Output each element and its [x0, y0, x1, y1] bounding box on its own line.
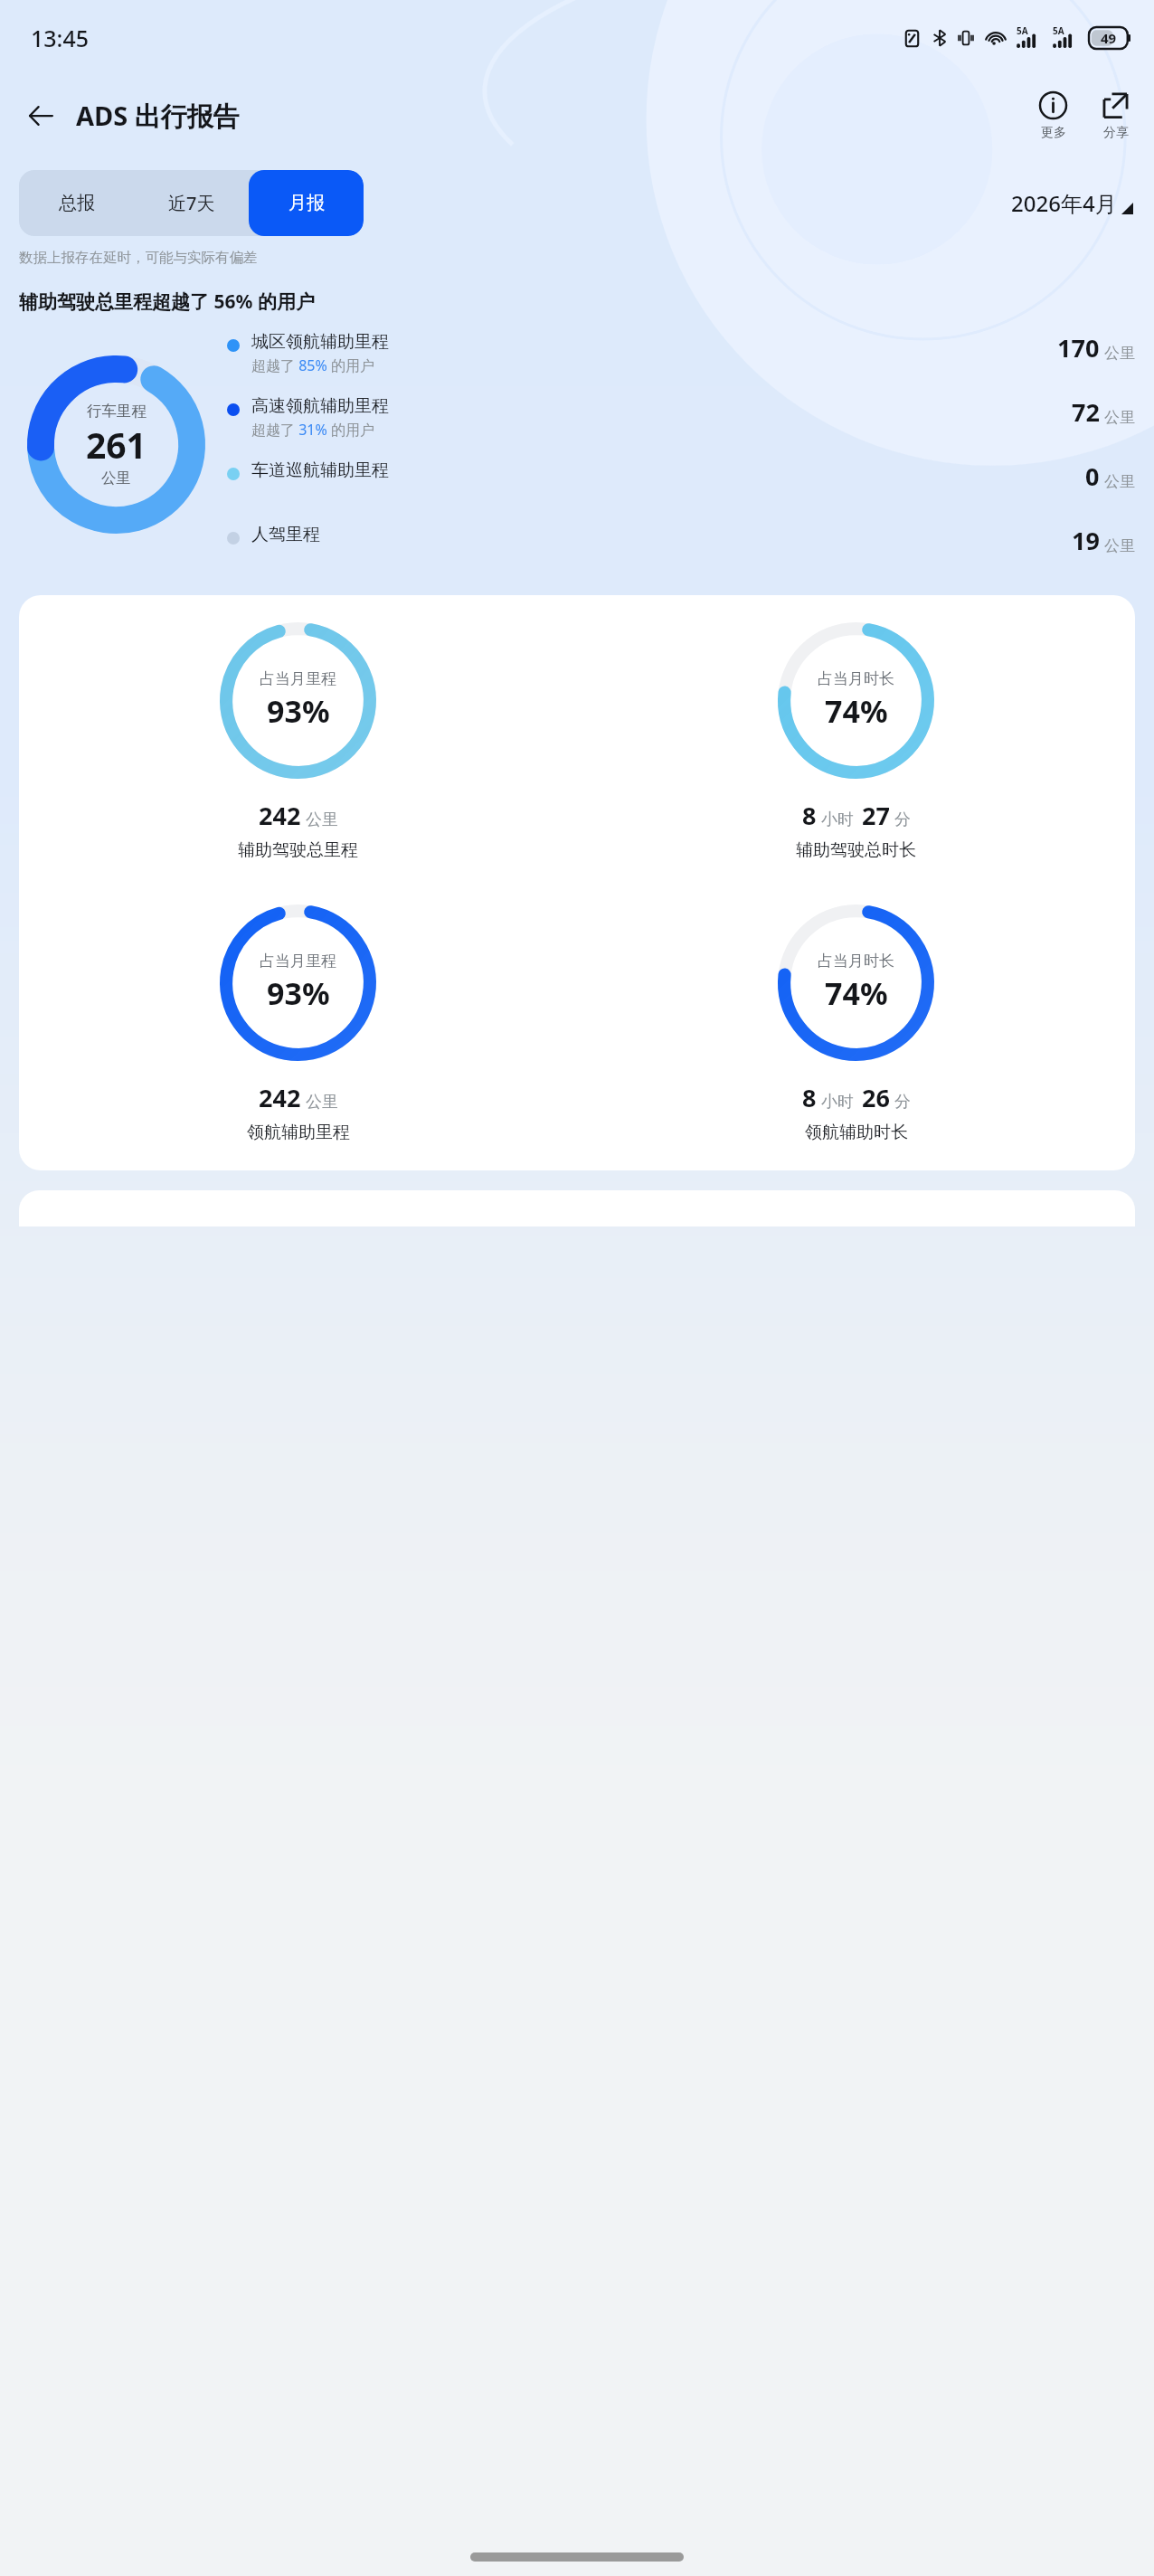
staticText: 2026年4月 [1011, 188, 1117, 218]
staticText: 8 [802, 799, 817, 832]
button[interactable]: 2026年4月 [1009, 188, 1135, 218]
staticText: 分 [894, 1092, 911, 1113]
staticText: 分 [894, 810, 911, 830]
staticText: 人驾里程 [251, 524, 320, 545]
button[interactable]: 占当月时长 [577, 622, 1135, 861]
staticText: 小时 [821, 1092, 854, 1113]
staticText: 高速领航辅助里程 [251, 395, 389, 417]
staticText: 领航辅助时长 [805, 1122, 908, 1143]
staticText: 占当月里程 [260, 669, 336, 688]
staticText: 更多 [1041, 125, 1066, 141]
staticText: 车道巡航辅助里程 [251, 459, 389, 481]
button[interactable]: Share [1095, 89, 1136, 143]
staticText: 公里 [1104, 472, 1135, 491]
button[interactable]: Back [16, 91, 65, 140]
staticText: 5A [1017, 24, 1028, 37]
staticText: 辅助驾驶总里程 [238, 839, 358, 861]
staticText: 公里 [306, 810, 338, 830]
staticText: 公里 [101, 469, 131, 488]
button[interactable]: 月报 [249, 170, 364, 236]
staticText: 数据上报存在延时，可能与实际有偏差 [19, 249, 258, 267]
staticText: 月报 [288, 192, 325, 214]
staticText: 26 [862, 1081, 890, 1114]
staticText: 72 [1072, 395, 1100, 429]
staticText: 170 [1057, 331, 1100, 365]
staticText: 辅助驾驶总时长 [796, 839, 916, 861]
staticText: 城区领航辅助里程 [251, 331, 389, 353]
staticText: 分享 [1103, 125, 1129, 141]
staticText: 74% [825, 972, 888, 1014]
button[interactable]: 车道巡航辅助里程 [227, 459, 1135, 493]
staticText: 242 [259, 799, 301, 832]
staticText: 19 [1072, 524, 1100, 557]
button[interactable]: 近7天 [134, 170, 249, 236]
staticText: 小时 [821, 810, 854, 830]
staticText: 公里 [1104, 344, 1135, 363]
staticText: 辅助驾驶总里程超越了 56% 的用户 [19, 289, 315, 315]
staticText: 74% [825, 690, 888, 732]
staticText: 93% [267, 972, 330, 1014]
staticText: 占当月里程 [260, 952, 336, 971]
staticText: 占当月时长 [818, 669, 894, 688]
staticText: 27 [862, 799, 890, 832]
staticText: 超越了 85% 的用户 [251, 355, 374, 375]
button[interactable]: 占当月里程 [19, 904, 577, 1143]
button[interactable]: 总报 [19, 170, 134, 236]
staticText: 近7天 [168, 191, 215, 215]
button[interactable]: More [1033, 89, 1074, 143]
staticText: 公里 [1104, 536, 1135, 555]
button[interactable]: 人驾里程 [227, 524, 1135, 557]
staticText: 占当月时长 [818, 952, 894, 971]
staticText: 8 [802, 1081, 817, 1114]
button[interactable]: 城区领航辅助里程 [227, 331, 1135, 375]
staticText: 242 [259, 1081, 301, 1114]
button[interactable]: 占当月里程 [19, 622, 577, 861]
staticText: 49 [1101, 29, 1117, 47]
staticText: 0 [1085, 459, 1100, 493]
staticText: ADS 出行报告 [76, 98, 240, 134]
staticText: 13:45 [31, 23, 90, 53]
staticText: 93% [267, 690, 330, 732]
button[interactable]: 高速领航辅助里程 [227, 395, 1135, 440]
staticText: 超越了 31% 的用户 [251, 420, 374, 440]
staticText: 总报 [59, 192, 95, 214]
staticText: 行车里程 [87, 402, 147, 421]
staticText: 5A [1053, 24, 1064, 37]
button[interactable]: 占当月时长 [577, 904, 1135, 1143]
staticText: 公里 [306, 1092, 338, 1113]
staticText: 公里 [1104, 408, 1135, 427]
staticText: 261 [86, 421, 147, 469]
staticText: 领航辅助里程 [247, 1122, 350, 1143]
